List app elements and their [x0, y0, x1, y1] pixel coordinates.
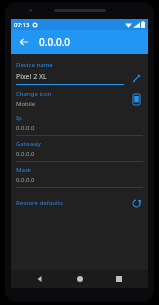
other: Restore defaults — [129, 196, 143, 210]
button[interactable]: Home — [69, 270, 91, 288]
button[interactable]: Restore defaults — [11, 188, 148, 214]
staticText: 07:13 — [14, 21, 30, 29]
button[interactable]: Back — [29, 270, 51, 288]
staticText: Mobile — [16, 100, 36, 108]
staticText: Pixel 2 XL — [16, 72, 47, 82]
button[interactable]: Change icon — [11, 86, 148, 110]
button[interactable]: Gateway — [11, 136, 148, 162]
button[interactable]: Edit device name — [129, 71, 143, 85]
button[interactable]: Device name — [11, 58, 148, 86]
button[interactable]: Back — [16, 34, 32, 50]
button[interactable]: Change icon — [129, 92, 143, 106]
staticText: 0.0.0.0 — [16, 150, 35, 158]
staticText: Change icon — [16, 90, 52, 98]
button[interactable]: Recent apps — [108, 270, 130, 288]
staticText: Mask — [16, 166, 32, 174]
staticText: Gateway — [16, 140, 41, 148]
button[interactable]: Mask — [11, 162, 148, 188]
staticText: 0.0.0.0 — [39, 35, 71, 49]
staticText: 0.0.0.0 — [16, 176, 35, 184]
staticText: 0.0.0.0 — [16, 124, 35, 132]
staticText: Ip — [16, 114, 22, 122]
staticText: Restore defaults — [16, 199, 129, 207]
staticText: Device name — [16, 61, 53, 69]
button[interactable]: Ip — [11, 110, 148, 136]
